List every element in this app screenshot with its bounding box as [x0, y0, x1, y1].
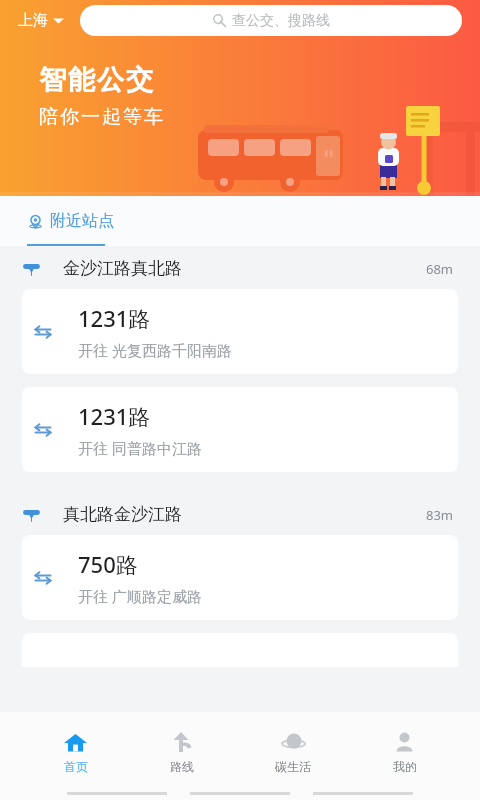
staticText: 路线 — [170, 759, 194, 774]
button[interactable]: 1231路 — [22, 289, 458, 374]
staticText: 陪你一起等车 — [38, 105, 164, 129]
staticText: 750路 — [78, 549, 138, 579]
button[interactable]: 查公交、搜路线 — [80, 5, 462, 36]
staticText: 开往 光复西路千阳南路 — [78, 340, 232, 360]
button[interactable]: 碳生活 — [257, 728, 329, 776]
staticText: 83m — [426, 506, 454, 524]
button[interactable]: 上海 — [14, 7, 68, 34]
staticText: 真北路金沙江路 — [63, 504, 182, 525]
staticText: 智能公交 — [38, 63, 154, 97]
staticText: 上海 — [18, 11, 48, 30]
staticText: 开往 同普路中江路 — [78, 438, 202, 458]
staticText: 查公交、搜路线 — [232, 12, 330, 30]
button[interactable]: 首页 — [45, 728, 106, 776]
button[interactable]: 附近站点 — [24, 211, 118, 231]
button[interactable]: 1231路 — [22, 387, 458, 472]
staticText: 开往 广顺路定威路 — [78, 586, 202, 606]
staticText: 附近站点 — [50, 211, 114, 231]
button[interactable]: 路线 — [151, 728, 212, 776]
button[interactable]: 真北路金沙江路 — [0, 504, 480, 525]
staticText: 金沙江路真北路 — [63, 258, 182, 279]
button[interactable]: 750路 — [22, 535, 458, 620]
staticText: 1231路 — [78, 303, 151, 333]
button[interactable]: 金沙江路真北路 — [0, 258, 480, 279]
staticText: 首页 — [64, 759, 88, 774]
staticText: 68m — [426, 260, 454, 278]
staticText: 1231路 — [78, 401, 151, 431]
button[interactable]: 我的 — [374, 728, 435, 776]
staticText: 碳生活 — [275, 759, 311, 774]
staticText: 我的 — [393, 759, 417, 774]
